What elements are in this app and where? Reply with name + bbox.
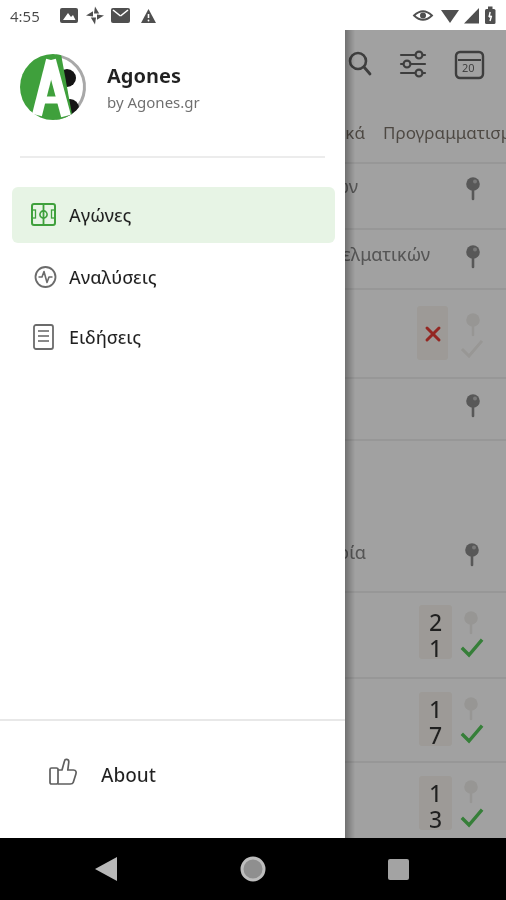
- staticText: Αγώνες: [69, 203, 132, 228]
- button[interactable]: [223, 850, 283, 888]
- button[interactable]: Αγώνες: [12, 187, 335, 243]
- staticText: πρωτάθλημα επαγγελματικών: [0, 242, 430, 267]
- staticText: Agones: [107, 62, 181, 89]
- staticText: Αποτελεσματικά: [150, 121, 365, 144]
- staticText: Πρωτάθλημα Ελλήνων: [0, 174, 358, 199]
- staticText: About: [101, 762, 157, 788]
- button[interactable]: [368, 850, 428, 888]
- staticText: 1: [419, 632, 452, 663]
- staticText: Γ' εθνική κατηγορία: [0, 540, 366, 565]
- button[interactable]: [449, 44, 489, 84]
- staticText: 3: [419, 803, 452, 834]
- staticText: 2: [419, 606, 452, 637]
- button[interactable]: Ειδήσεις: [12, 309, 335, 365]
- button[interactable]: [393, 44, 433, 84]
- button[interactable]: [340, 44, 380, 84]
- button[interactable]: Αποτελεσματικά: [150, 100, 365, 158]
- button[interactable]: About: [0, 735, 345, 805]
- button[interactable]: Προγραμματισμ: [383, 100, 506, 158]
- staticText: by Agones.gr: [107, 92, 200, 112]
- staticText: Αναλύσεις: [69, 265, 157, 290]
- staticText: 1: [419, 693, 452, 724]
- staticText: 4:55: [10, 6, 40, 26]
- staticText: Προγραμματισμ: [383, 121, 506, 144]
- button[interactable]: Αναλύσεις: [12, 249, 335, 305]
- staticText: 1: [419, 777, 452, 808]
- button[interactable]: [76, 850, 136, 888]
- staticText: 7: [419, 719, 452, 750]
- staticText: 20: [462, 60, 475, 75]
- staticText: Ειδήσεις: [69, 325, 142, 350]
